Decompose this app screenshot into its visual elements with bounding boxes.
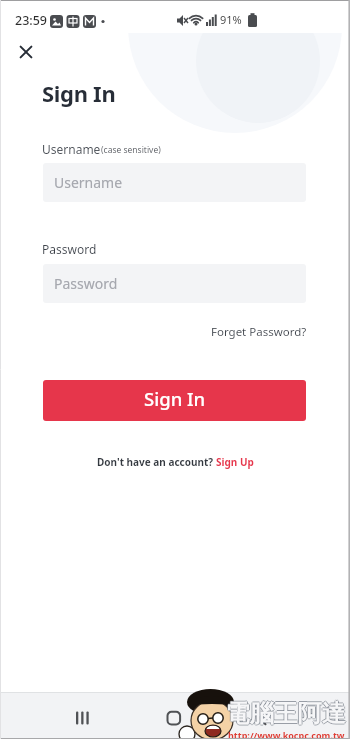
staticText: 23:59 bbox=[15, 12, 48, 29]
staticText: Sign Up bbox=[216, 455, 254, 469]
staticText: Sign In bbox=[144, 386, 206, 411]
button[interactable] bbox=[116, 692, 233, 739]
button[interactable] bbox=[14, 40, 38, 64]
staticText: Username bbox=[42, 141, 101, 157]
staticText: 電腦王阿達 bbox=[226, 697, 346, 727]
staticText: 91% bbox=[220, 12, 242, 27]
staticText: Sign In bbox=[42, 78, 116, 108]
staticText: Password bbox=[54, 274, 118, 293]
staticText: Username bbox=[54, 173, 123, 192]
button[interactable] bbox=[233, 692, 350, 739]
button[interactable]: Username bbox=[43, 163, 306, 202]
button[interactable]: Password bbox=[43, 264, 306, 303]
button[interactable]: Sign In bbox=[43, 380, 306, 421]
staticText: (case sensitive) bbox=[101, 144, 161, 156]
staticText: Forget Password? bbox=[211, 324, 307, 340]
staticText: Password bbox=[42, 241, 97, 257]
staticText: 電腦王阿達 bbox=[226, 699, 346, 729]
staticText: Don't have an account? bbox=[97, 455, 216, 469]
button[interactable]: Sign Up bbox=[216, 455, 254, 469]
staticText: http://www.kocpc.com.tw bbox=[228, 729, 345, 739]
staticText: 電腦王阿達 bbox=[227, 698, 347, 728]
button[interactable] bbox=[0, 692, 116, 739]
staticText: 電腦王阿達 bbox=[226, 698, 346, 728]
staticText: 電腦王阿達 bbox=[225, 698, 345, 728]
button[interactable]: Forget Password? bbox=[211, 324, 307, 340]
